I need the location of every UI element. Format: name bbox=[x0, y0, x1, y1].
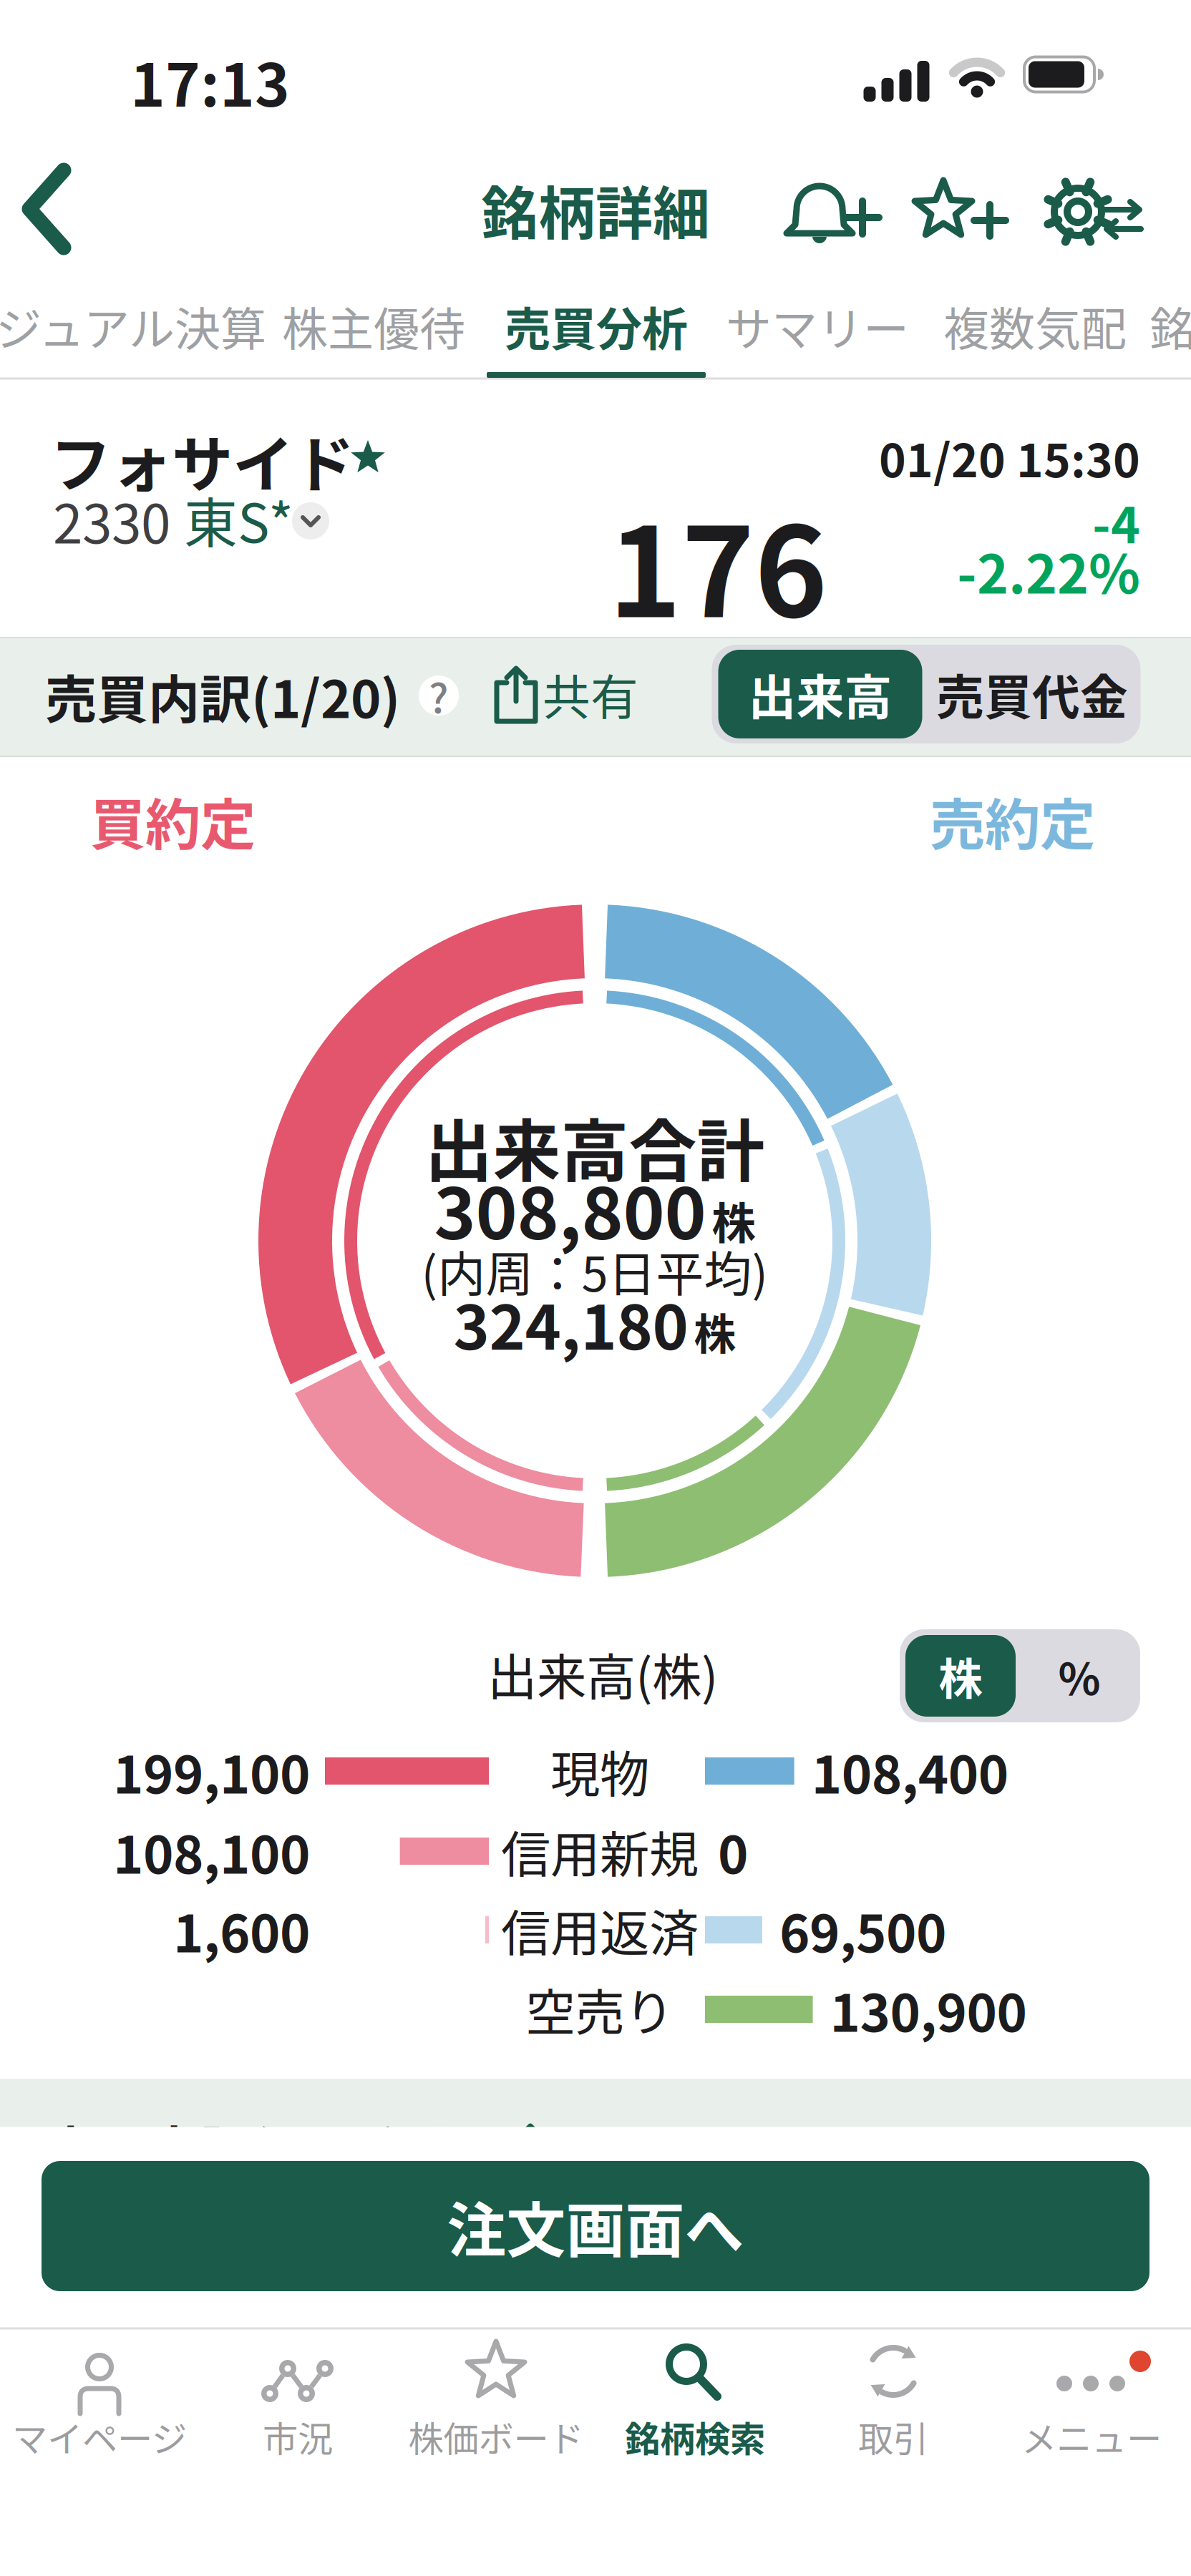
button[interactable]: Settings bbox=[1039, 167, 1154, 256]
staticText: 複数気配 bbox=[943, 293, 1127, 358]
button[interactable]: マイページ bbox=[28, 2340, 171, 2462]
button[interactable]: Share bbox=[492, 660, 638, 728]
staticText: 売買内訳(1/20) bbox=[45, 659, 400, 732]
button[interactable]: 売買分析 bbox=[505, 293, 688, 358]
staticText: 株価ボード bbox=[408, 2412, 584, 2461]
staticText: 2330 bbox=[53, 482, 170, 558]
staticText: 出来高 bbox=[748, 660, 892, 728]
button[interactable]: 株主優待 bbox=[282, 293, 465, 358]
staticText: ジュアル決算 bbox=[0, 293, 266, 358]
button[interactable]: 銘柄詳細 bbox=[1149, 293, 1191, 358]
staticText: サマリー bbox=[726, 293, 909, 358]
button[interactable]: Market selector bbox=[292, 502, 329, 540]
staticText: 308,800 bbox=[434, 1159, 706, 1258]
staticText: 108,400 bbox=[811, 1735, 1008, 1807]
staticText: ? bbox=[429, 667, 449, 724]
button[interactable]: Add alert bbox=[779, 167, 887, 256]
staticText: 売買内訳(1/21) bbox=[45, 2110, 400, 2183]
staticText: 株主優待 bbox=[282, 293, 465, 358]
staticText: 69,500 bbox=[779, 1894, 946, 1966]
staticText: マイページ bbox=[12, 2412, 187, 2461]
button[interactable]: サマリー bbox=[726, 293, 909, 358]
staticText: 176 bbox=[608, 476, 827, 651]
staticText: 株 bbox=[712, 1189, 755, 1251]
staticText: 銘柄検索 bbox=[625, 2412, 765, 2461]
button[interactable]: Help bbox=[419, 675, 459, 716]
staticText: 売買代金 bbox=[936, 660, 1128, 728]
button[interactable]: 市況 bbox=[226, 2340, 369, 2462]
staticText: 買約定 bbox=[90, 782, 256, 860]
staticText: 売約定 bbox=[930, 782, 1095, 860]
staticText: 324,180 bbox=[453, 1280, 688, 1366]
button[interactable]: % bbox=[1022, 1635, 1137, 1717]
button[interactable]: 取引 bbox=[822, 2340, 965, 2462]
staticText: 売買分析 bbox=[505, 293, 688, 358]
staticText: 銘柄詳細 bbox=[1149, 293, 1191, 358]
staticText: 01/20 15:30 bbox=[879, 425, 1140, 490]
staticText: 108,100 bbox=[113, 1815, 310, 1888]
button[interactable]: 株 bbox=[905, 1635, 1016, 1717]
staticText: 取引 bbox=[858, 2412, 928, 2461]
staticText: フォサイド bbox=[50, 417, 354, 503]
button[interactable]: Add to watchlist bbox=[904, 167, 1011, 256]
staticText: メニュー bbox=[1021, 2412, 1162, 2461]
staticText: 株 bbox=[694, 1302, 736, 1361]
staticText: 銘柄詳細 bbox=[481, 169, 710, 249]
staticText: % bbox=[1058, 1645, 1100, 1707]
staticText: 株 bbox=[939, 1645, 982, 1707]
staticText: 1,600 bbox=[173, 1894, 310, 1966]
staticText: -4 bbox=[1092, 487, 1140, 557]
staticText: 共有 bbox=[543, 660, 638, 728]
button[interactable]: 出来高 bbox=[718, 650, 922, 738]
staticText: 空売り bbox=[526, 1974, 674, 2044]
button[interactable]: 銘柄検索 bbox=[623, 2340, 767, 2462]
staticText: 199,100 bbox=[113, 1735, 310, 1807]
button[interactable]: Back bbox=[18, 163, 82, 255]
staticText: 現物 bbox=[550, 1736, 649, 1806]
staticText: 市況 bbox=[263, 2412, 333, 2461]
button[interactable]: ジュアル決算 bbox=[0, 293, 282, 358]
staticText: (内周：5日平均) bbox=[421, 1237, 768, 1304]
button[interactable]: メニュー bbox=[1020, 2340, 1163, 2462]
staticText: 信用返済 bbox=[501, 1895, 699, 1965]
staticText: 0 bbox=[718, 1815, 748, 1888]
button[interactable]: 複数気配 bbox=[943, 293, 1127, 358]
button[interactable]: 株価ボード bbox=[424, 2340, 568, 2462]
staticText: 注文画面へ bbox=[447, 2184, 744, 2268]
button[interactable]: 売買代金 bbox=[925, 650, 1139, 738]
staticText: 17:13 bbox=[130, 39, 290, 123]
staticText: 出来高合計 bbox=[425, 1099, 765, 1194]
staticText: -2.22% bbox=[957, 533, 1140, 608]
staticText: 東S* bbox=[184, 482, 293, 557]
staticText: 信用新規 bbox=[501, 1816, 699, 1886]
button[interactable]: 注文画面へ bbox=[42, 2161, 1149, 2291]
staticText: 出来高(株) bbox=[487, 1639, 718, 1709]
staticText: 130,900 bbox=[830, 1973, 1027, 2046]
